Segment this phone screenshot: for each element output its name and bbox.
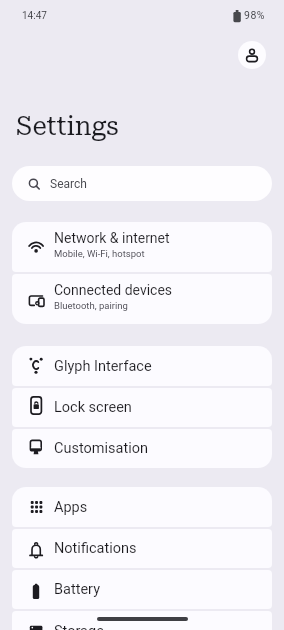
staticText: Bluetooth, pairing <box>54 300 128 311</box>
staticText: Settings <box>16 111 119 141</box>
staticText: Storage <box>54 623 104 630</box>
staticText: Lock screen <box>54 399 132 416</box>
staticText: Apps <box>54 499 88 516</box>
staticText: Customisation <box>54 440 148 457</box>
staticText: Connected devices <box>54 282 173 298</box>
staticText: 98% <box>244 9 265 21</box>
staticText: Battery <box>54 581 100 598</box>
staticText: Network & internet <box>54 230 170 246</box>
staticText: Notifications <box>54 540 137 557</box>
staticText: 14:47 <box>22 10 47 22</box>
staticText: Mobile, Wi-Fi, hotspot <box>54 248 145 259</box>
staticText: Search <box>50 177 87 191</box>
staticText: Glyph Interface <box>54 358 152 375</box>
